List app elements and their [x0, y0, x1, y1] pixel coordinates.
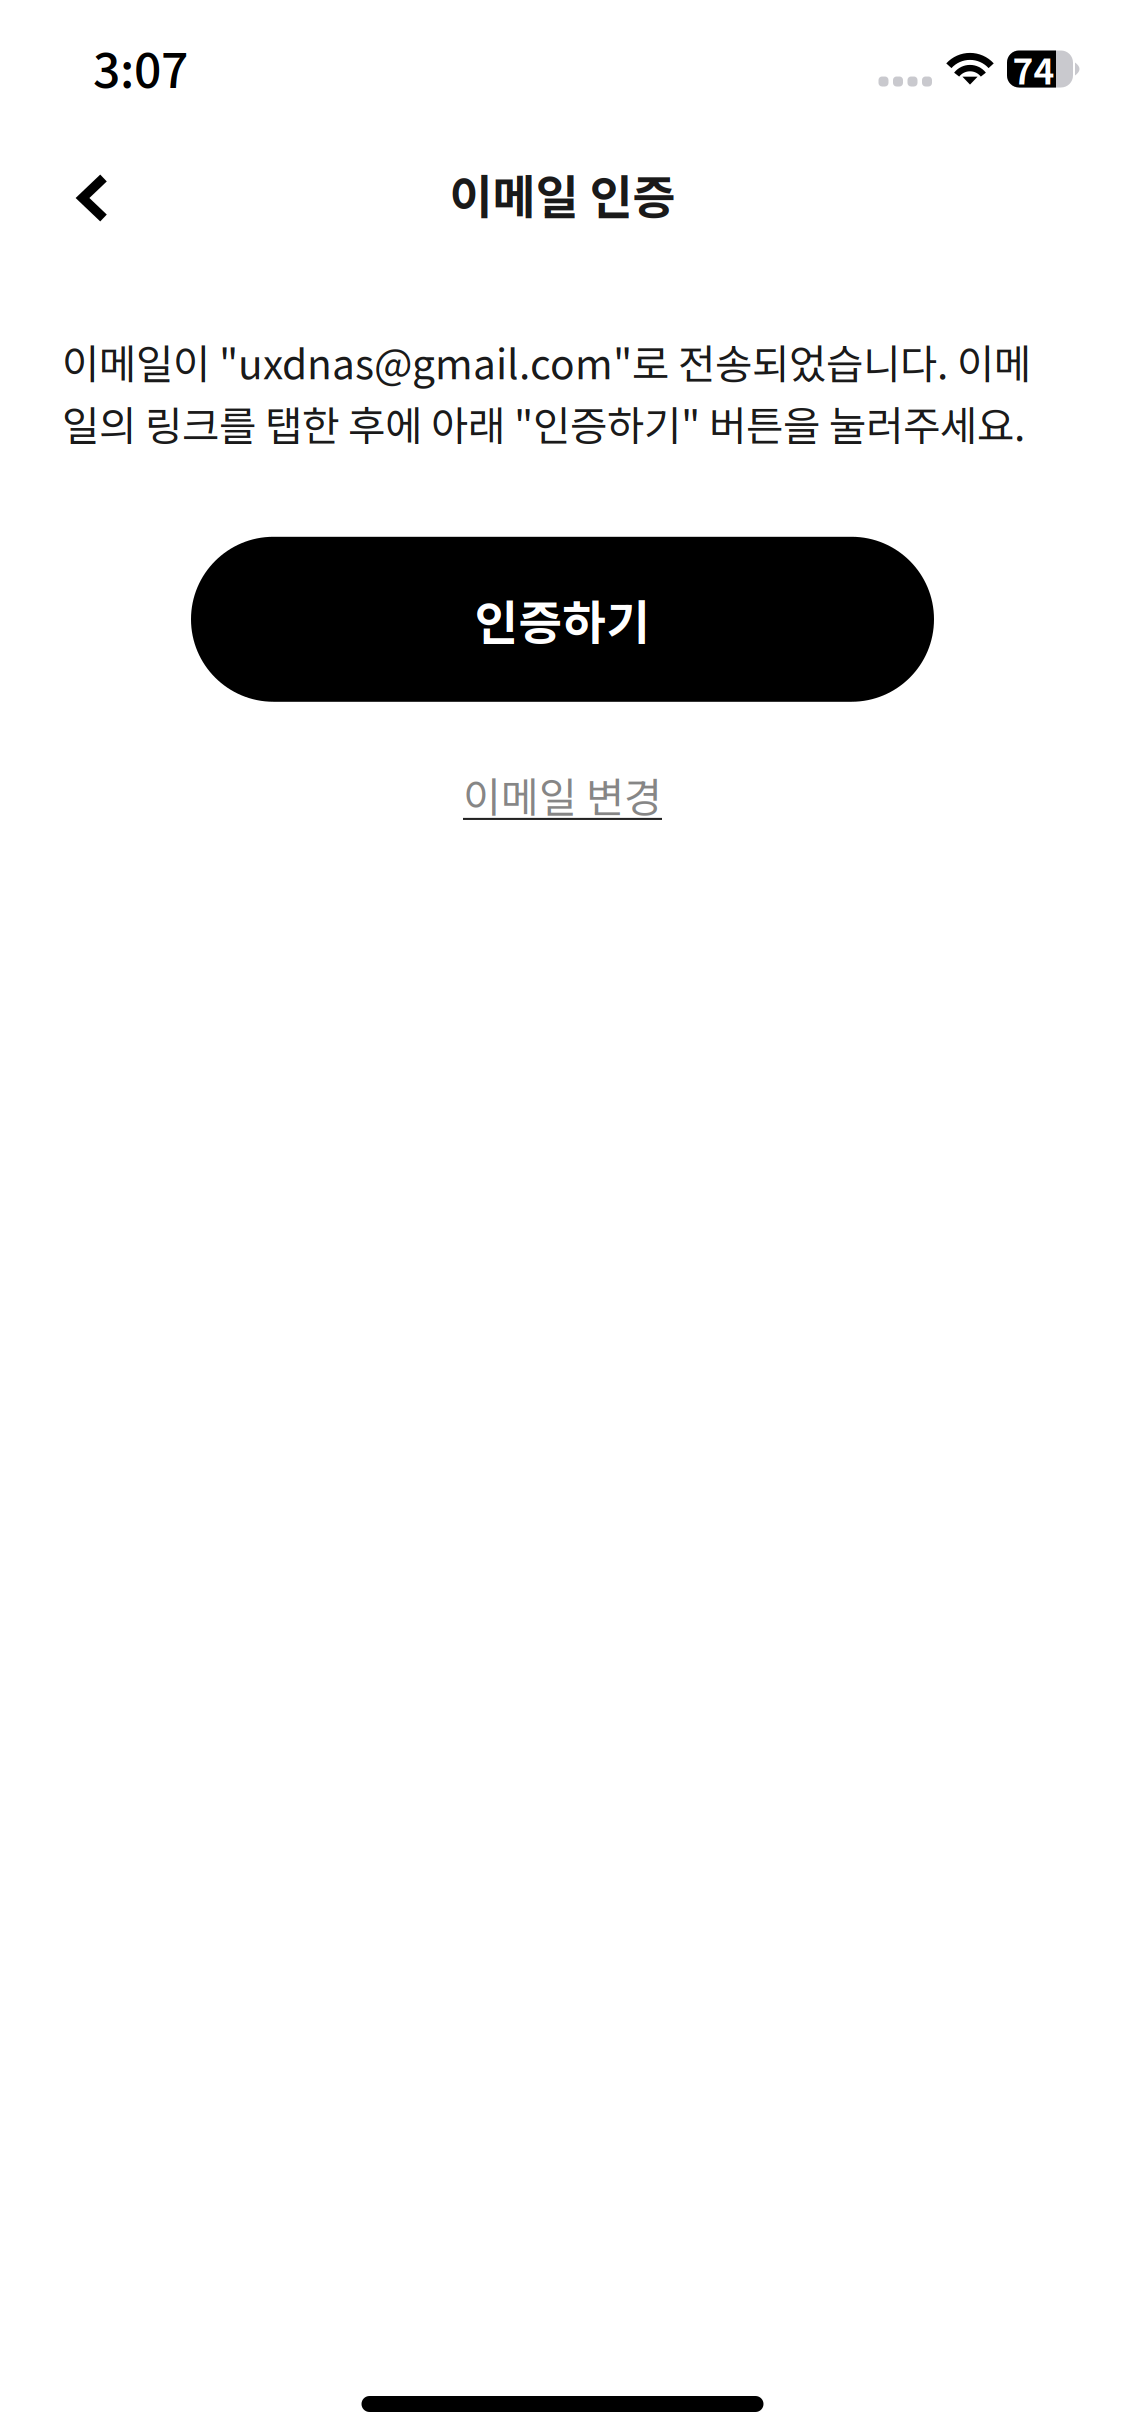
button[interactable]: Back [33, 138, 153, 258]
staticText: 이메일 변경 [463, 765, 662, 825]
staticText: 인증하기 [474, 585, 650, 653]
staticText: 이메일이 "uxdnas@gmail.com"로 전송되었습니다. 이메일의 링… [62, 332, 1031, 453]
staticText: 74 [1012, 43, 1054, 95]
staticText: 이메일 인증 [449, 160, 675, 228]
button[interactable]: 인증하기 [191, 537, 934, 702]
button[interactable]: 이메일 변경 [0, 765, 1125, 825]
staticText: 3:07 [93, 32, 188, 102]
